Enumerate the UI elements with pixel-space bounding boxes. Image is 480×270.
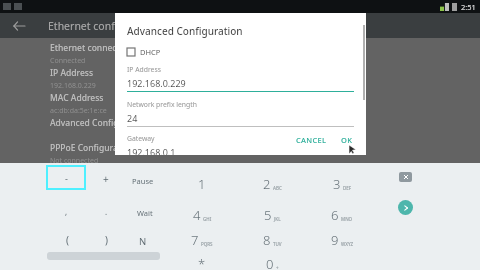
button[interactable]: IP Address	[0, 63, 480, 88]
staticText: 192.168.0.1	[127, 146, 176, 155]
staticText: 7	[191, 231, 199, 249]
staticText: PPPoE Configuration	[50, 142, 134, 154]
staticText: Advanced Configuration	[50, 117, 149, 129]
staticText: ac:db:da:5e:1e:ce	[50, 106, 107, 113]
staticText: IP Address	[50, 67, 94, 79]
button[interactable]: (	[53, 229, 81, 251]
button[interactable]: PPPoE Configuration	[0, 138, 480, 163]
staticText: ,	[65, 206, 68, 217]
button[interactable]: 6	[320, 202, 364, 224]
staticText: MAC Address	[50, 92, 104, 104]
button[interactable]: 2	[250, 171, 294, 193]
staticText: 0	[266, 255, 274, 270]
button[interactable]: MAC Address	[0, 88, 480, 113]
staticText: Ethernet connection	[50, 42, 133, 54]
staticText: 6	[331, 206, 339, 224]
button[interactable]: 5	[250, 202, 294, 224]
staticText: Wait	[137, 208, 153, 218]
button[interactable]: Ethernet connection	[0, 38, 480, 63]
staticText: Not connected	[50, 156, 99, 163]
staticText: *	[198, 255, 206, 270]
staticText: 8	[263, 231, 271, 249]
staticText: 1	[198, 175, 206, 193]
staticText: .	[105, 206, 108, 217]
button[interactable]: *	[180, 251, 224, 270]
staticText: 192.168.0.229	[50, 81, 96, 88]
staticText: MNO	[341, 216, 353, 222]
staticText: Gateway	[127, 134, 155, 143]
button[interactable]: Wait	[131, 202, 159, 224]
button[interactable]: 3	[320, 171, 364, 193]
button[interactable]: CANCEL	[291, 132, 332, 148]
staticText: OK	[341, 135, 353, 145]
button[interactable]: ,	[52, 200, 80, 222]
staticText: ABC	[273, 185, 282, 191]
staticText: WXYZ	[341, 241, 354, 247]
button[interactable]: 0	[250, 251, 294, 270]
button[interactable]: 1	[180, 171, 224, 193]
button[interactable]: DHCP	[127, 47, 161, 57]
staticText: Ethernet configuration	[48, 19, 160, 33]
staticText: JKL	[274, 216, 281, 222]
button[interactable]: 4	[180, 202, 224, 224]
staticText: +	[276, 265, 279, 270]
staticText: Network prefix length	[127, 100, 197, 109]
staticText: TUV	[273, 241, 282, 247]
staticText: 9	[331, 231, 339, 249]
staticText: 24	[127, 112, 138, 124]
button[interactable]: 9	[320, 227, 364, 249]
staticText: DEF	[343, 185, 352, 191]
staticText: 192.168.0.229	[127, 77, 186, 89]
staticText: 2	[263, 175, 271, 193]
staticText: )	[105, 233, 108, 247]
button[interactable]: Pause	[129, 170, 157, 192]
staticText: CANCEL	[296, 135, 327, 145]
staticText: 5	[264, 206, 272, 224]
button[interactable]: 7	[180, 227, 224, 249]
staticText: -	[65, 172, 68, 184]
button[interactable]: +	[92, 168, 120, 190]
staticText: GHI	[203, 216, 212, 222]
staticText: N	[139, 235, 147, 248]
staticText: (	[66, 233, 69, 247]
staticText: IP Address	[127, 65, 161, 74]
staticText: +	[103, 172, 109, 186]
button[interactable]: -	[46, 165, 86, 190]
button[interactable]: Delete	[399, 172, 412, 182]
button[interactable]: Advanced Configuration	[0, 113, 480, 138]
staticText: 4	[193, 206, 201, 224]
staticText: Advanced Configuration	[127, 24, 243, 38]
staticText: PQRS	[201, 241, 213, 247]
button[interactable]: .	[92, 200, 120, 222]
staticText: 3	[333, 175, 341, 193]
staticText: 2:51	[461, 2, 476, 12]
staticText: Connected	[50, 56, 86, 63]
staticText: DHCP	[140, 47, 161, 57]
button[interactable]: Enter	[398, 200, 413, 215]
staticText: Pause	[132, 176, 154, 186]
button[interactable]: Back	[8, 15, 30, 37]
button[interactable]: OK	[336, 132, 358, 148]
button[interactable]: )	[92, 229, 120, 251]
button[interactable]: N	[129, 230, 157, 252]
button[interactable]: 8	[250, 227, 294, 249]
